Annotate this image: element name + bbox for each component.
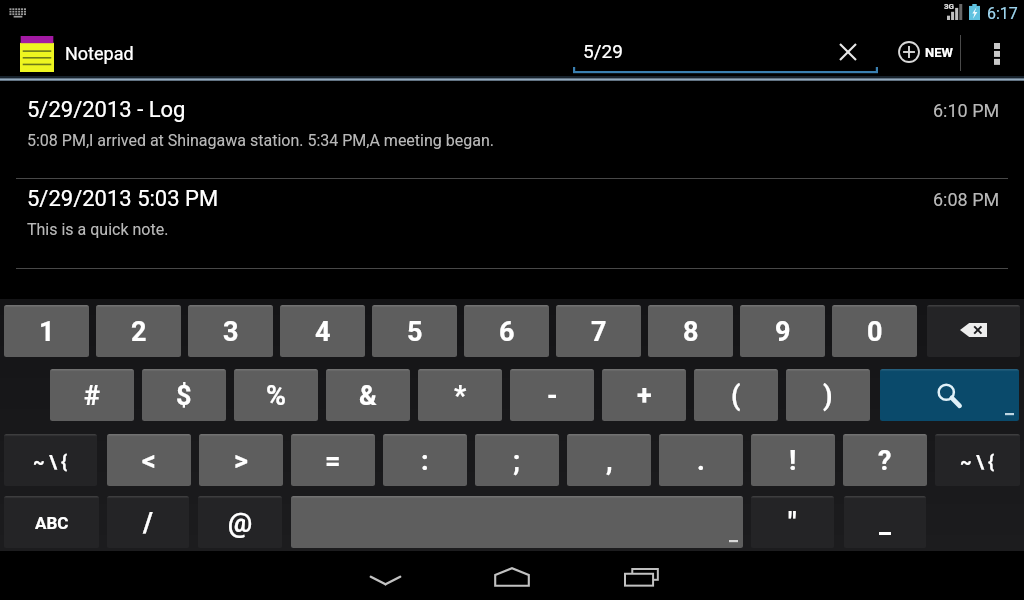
- button[interactable]: 3: [188, 305, 273, 357]
- staticText: 5:08 PM,I arrived at Shinagawa station. …: [27, 131, 494, 150]
- staticText: $: [176, 380, 192, 412]
- staticText: 5/29: [583, 40, 623, 62]
- button[interactable]: 5/29/2013 - Log: [0, 82, 1024, 177]
- staticText: 5: [407, 316, 423, 348]
- button[interactable]: $: [142, 369, 226, 421]
- button[interactable]: More options: [972, 25, 1022, 80]
- button[interactable]: 4: [280, 305, 365, 357]
- staticText: 3: [223, 316, 239, 348]
- staticText: ~ \ {: [960, 451, 995, 472]
- button[interactable]: +: [602, 369, 686, 421]
- staticText: Notepad: [65, 43, 134, 64]
- staticText: This is a quick note.: [27, 220, 169, 239]
- button[interactable]: (: [694, 369, 778, 421]
- staticText: :: [421, 445, 429, 477]
- staticText: 6:08 PM: [933, 189, 1000, 210]
- staticText: +: [637, 380, 652, 412]
- button[interactable]: ~ \ {: [935, 434, 1020, 486]
- button[interactable]: ,: [567, 434, 651, 486]
- staticText: (: [731, 380, 741, 412]
- button[interactable]: Home: [482, 557, 542, 597]
- staticText: ~ \ {: [33, 451, 68, 472]
- staticText: 7: [591, 316, 607, 348]
- staticText: 6:10 PM: [933, 100, 1000, 121]
- button[interactable]: 5: [372, 305, 457, 357]
- button[interactable]: Space: [291, 496, 743, 548]
- button[interactable]: 7: [556, 305, 641, 357]
- staticText: 8: [683, 316, 699, 348]
- button[interactable]: #: [50, 369, 134, 421]
- button[interactable]: 1: [4, 305, 89, 357]
- button[interactable]: Hide keyboard: [355, 559, 415, 599]
- button[interactable]: 9: [740, 305, 825, 357]
- staticText: _: [879, 507, 892, 539]
- staticText: 4: [315, 316, 331, 348]
- button[interactable]: 0: [832, 305, 917, 357]
- staticText: 0: [867, 316, 883, 348]
- staticText: 6:17: [987, 4, 1018, 23]
- button[interactable]: <: [107, 434, 191, 486]
- staticText: ,: [606, 445, 613, 477]
- button[interactable]: 5/29/2013 5:03 PM: [0, 171, 1024, 266]
- staticText: 2: [131, 316, 147, 348]
- staticText: *: [454, 380, 467, 412]
- button[interactable]: NEW: [889, 25, 959, 80]
- button[interactable]: Notepad: [20, 26, 134, 81]
- button[interactable]: Clear search: [826, 32, 870, 72]
- staticText: !: [789, 445, 797, 477]
- staticText: &: [359, 380, 377, 412]
- button[interactable]: 8: [648, 305, 733, 357]
- button[interactable]: ?: [843, 434, 927, 486]
- button[interactable]: =: [291, 434, 375, 486]
- button[interactable]: @: [198, 496, 282, 548]
- button[interactable]: ABC: [4, 496, 99, 548]
- button[interactable]: Search: [880, 369, 1019, 421]
- staticText: 1: [39, 316, 55, 348]
- staticText: 3G: [944, 2, 955, 11]
- staticText: 5/29/2013 5:03 PM: [27, 186, 219, 212]
- staticText: NEW: [925, 45, 953, 60]
- staticText: 6: [499, 316, 515, 348]
- button[interactable]: ;: [475, 434, 559, 486]
- staticText: -: [547, 380, 558, 412]
- button[interactable]: >: [199, 434, 283, 486]
- button[interactable]: *: [418, 369, 502, 421]
- button[interactable]: Delete: [927, 305, 1020, 357]
- button[interactable]: 6: [464, 305, 549, 357]
- button[interactable]: _: [844, 496, 926, 548]
- staticText: .: [697, 445, 705, 477]
- staticText: %: [266, 380, 286, 412]
- button[interactable]: 2: [96, 305, 181, 357]
- staticText: #: [84, 380, 100, 412]
- button[interactable]: ": [751, 496, 834, 548]
- button[interactable]: Recent apps: [612, 557, 672, 597]
- button[interactable]: ~ \ {: [4, 434, 97, 486]
- staticText: @: [228, 507, 253, 539]
- button[interactable]: &: [326, 369, 410, 421]
- button[interactable]: %: [234, 369, 318, 421]
- button[interactable]: /: [107, 496, 189, 548]
- staticText: /: [143, 507, 154, 539]
- button[interactable]: ): [786, 369, 870, 421]
- button[interactable]: !: [751, 434, 835, 486]
- staticText: ABC: [35, 513, 69, 533]
- staticText: =: [325, 445, 341, 477]
- button[interactable]: :: [383, 434, 467, 486]
- staticText: >: [234, 445, 248, 477]
- staticText: ;: [513, 445, 521, 477]
- button[interactable]: -: [510, 369, 594, 421]
- staticText: 5/29/2013 - Log: [27, 97, 186, 123]
- staticText: 9: [775, 316, 791, 348]
- staticText: <: [142, 445, 156, 477]
- staticText: ): [823, 380, 833, 412]
- button[interactable]: .: [659, 434, 743, 486]
- staticText: ?: [878, 445, 892, 477]
- staticText: ": [788, 507, 797, 539]
